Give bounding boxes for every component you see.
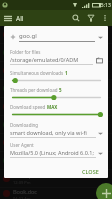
staticText: 04:12 Am [13,36,31,41]
button[interactable]: Video.mp4 [0,44,112,61]
other: Add [10,34,16,40]
staticText: 1 [65,70,68,76]
button[interactable]: Image.png [0,98,112,115]
button[interactable]: Archive.zip [0,62,112,79]
button[interactable]: Add [10,32,103,42]
button[interactable] [10,112,103,117]
staticText: 15:13 [98,2,111,9]
button[interactable]: smart download, only via wi-fi [10,129,103,138]
staticText: Archive.zip [13,64,41,71]
button[interactable]: Add download [96,183,112,199]
staticText: Song.mp3 [13,82,40,89]
other: Browse folder [96,57,103,64]
staticText: 03:55 Pm [13,144,31,149]
button[interactable]: Filter [84,11,98,25]
staticText: 12:09 Pm [13,180,31,185]
button[interactable]: Menu [0,10,16,26]
button[interactable]: Song.mp3 [0,80,112,97]
staticText: 04:11 Am [13,196,31,199]
staticText: All [16,14,24,23]
staticText: goo.gl [19,32,37,40]
staticText: MAX [47,104,58,110]
staticText: /storage/emulated/0/ADM [10,56,79,63]
staticText: User Agent [10,142,34,148]
button[interactable]: More options [98,11,112,25]
staticText: Setup.apk [13,118,39,125]
staticText: Video.mp4 [13,46,41,53]
staticText: smart download, only via wi-fi [10,129,87,136]
staticText: Book.doc [13,188,37,195]
staticText: Document.pdf [13,28,51,35]
button[interactable] [10,78,103,83]
button[interactable]: Backup.tar [0,170,112,187]
staticText: Notes.txt [13,136,37,143]
staticText: Movie.mkv [13,154,41,161]
button[interactable]: Setup.apk [0,116,112,133]
staticText: 11:02 Pm [13,72,31,77]
button[interactable]: CLOSE [78,165,103,178]
staticText: 07:21 Pm [13,108,31,113]
button[interactable]: /storage/emulated/0/ADM [10,56,103,65]
button[interactable]: Search [68,10,84,26]
button[interactable]: Document.pdf [0,26,112,43]
staticText: Folder for files [10,49,41,55]
staticText: Downloading [10,122,39,128]
button[interactable]: Book.doc [0,188,112,199]
button[interactable] [10,95,103,100]
staticText: 09:48 Pm [13,90,31,95]
staticText: Image.png [13,100,42,107]
staticText: Backup.tar [13,172,41,179]
staticText: CLOSE [82,168,99,175]
button[interactable]: Movie.mkv [0,152,112,169]
staticText: Simultaneous downloads [10,70,65,76]
staticText: Download speed [10,104,47,110]
staticText: 05:03 Pm [13,126,31,131]
button[interactable]: Notes.txt [0,134,112,151]
staticText: 5 [59,87,62,93]
staticText: Mozilla/5.0 (Linux; Android 6.0.1; HTC · [10,149,96,156]
button[interactable]: Mozilla/5.0 (Linux; Android 6.0.1; HTC · [10,149,103,158]
staticText: Threads per download [10,87,59,93]
